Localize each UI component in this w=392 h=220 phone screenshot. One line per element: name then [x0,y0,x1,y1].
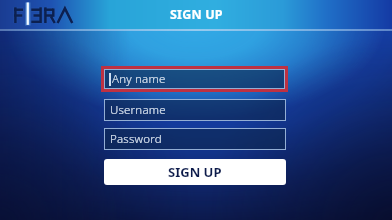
button[interactable]: SIGN UP [104,159,286,185]
staticText: SIGN UP [170,6,223,23]
staticText: SIGN UP [168,163,222,181]
button[interactable] [101,66,288,92]
staticText: Any name [112,71,166,87]
button[interactable]: Password [104,128,286,150]
staticText: Password [110,131,162,147]
button[interactable]: Username [104,99,286,121]
staticText: Username [110,102,166,118]
